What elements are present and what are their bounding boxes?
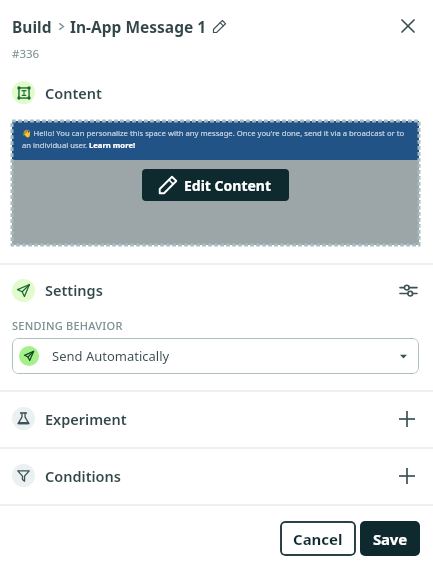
button[interactable]: Experiment xyxy=(0,390,433,447)
staticText: Send Automatically xyxy=(52,347,170,365)
staticText: Content xyxy=(45,83,102,103)
staticText: Conditions xyxy=(45,466,121,486)
staticText: #336 xyxy=(12,46,40,62)
staticText: Experiment xyxy=(45,409,127,429)
staticText: SENDING BEHAVIOR xyxy=(12,318,123,333)
staticText: Settings xyxy=(45,280,103,300)
button[interactable]: Send Automatically xyxy=(12,338,419,374)
staticText: In-App Message 1 xyxy=(70,16,207,37)
button[interactable]: Tune settings xyxy=(396,278,420,302)
button[interactable]: Conditions xyxy=(0,447,433,504)
button[interactable]: Close xyxy=(395,13,421,39)
button[interactable]: Save xyxy=(360,521,420,556)
button[interactable]: Cancel xyxy=(280,521,356,556)
staticText: Save xyxy=(373,529,407,549)
button[interactable]: Rename xyxy=(210,17,228,35)
staticText: 👋 Hello! You can personalize this space … xyxy=(22,128,405,150)
staticText: Build xyxy=(12,16,52,37)
button[interactable]: Edit Content xyxy=(142,169,289,201)
staticText: Edit Content xyxy=(184,176,272,195)
staticText: Cancel xyxy=(293,529,343,549)
